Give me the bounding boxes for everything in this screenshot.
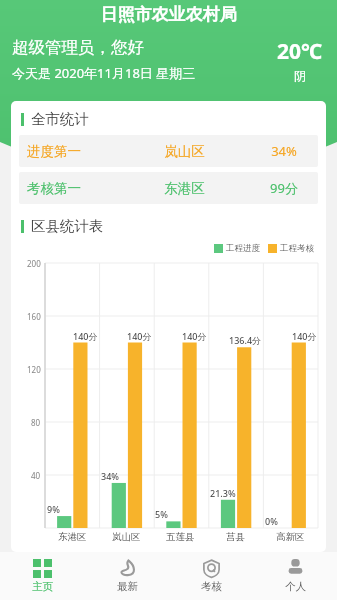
staticText: 140分 [73, 330, 98, 342]
staticText: 最新 [117, 580, 138, 593]
staticText: 超级管理员，您好 [12, 37, 144, 58]
button[interactable]: 考核 [169, 552, 253, 600]
staticText: 140分 [182, 330, 207, 342]
staticText: 5% [155, 508, 168, 520]
staticText: 考核第一 [27, 180, 113, 197]
staticText: 工程进度 [226, 243, 260, 254]
button[interactable]: 个人 [253, 552, 337, 600]
staticText: 岚山区 [112, 531, 141, 543]
staticText: 日照市农业农村局 [0, 4, 337, 25]
staticText: 40 [31, 470, 41, 481]
staticText: 岚山区 [113, 143, 256, 160]
staticText: 99分 [256, 179, 312, 197]
button[interactable]: 最新 [85, 552, 169, 600]
staticText: 34% [101, 470, 119, 482]
staticText: 高新区 [276, 531, 305, 543]
staticText: 140分 [127, 330, 152, 342]
button[interactable]: 主页 [0, 552, 85, 600]
staticText: 东港区 [113, 180, 256, 197]
staticText: 阴 [294, 68, 306, 83]
staticText: 东港区 [58, 531, 87, 543]
staticText: 0% [265, 515, 278, 527]
staticText: 200 [27, 258, 41, 269]
staticText: 区县统计表 [31, 217, 104, 235]
staticText: 9% [47, 503, 60, 515]
staticText: 全市统计 [31, 110, 89, 128]
staticText: 进度第一 [27, 143, 113, 160]
staticText: 个人 [285, 580, 306, 593]
staticText: 五莲县 [166, 531, 195, 543]
staticText: 120 [27, 364, 41, 375]
staticText: 工程考核 [280, 243, 314, 254]
staticText: 140分 [292, 330, 317, 342]
staticText: 考核 [201, 580, 222, 593]
button[interactable]: 进度第一 [19, 135, 318, 167]
staticText: 160 [27, 311, 41, 322]
staticText: 136.4分 [229, 334, 262, 346]
staticText: 20℃ [277, 37, 323, 66]
staticText: 80 [31, 417, 41, 428]
staticText: 21.3% [210, 487, 236, 499]
staticText: 今天是 2020年11月18日 星期三 [12, 64, 196, 82]
staticText: 莒县 [226, 531, 245, 543]
button[interactable]: 考核第一 [19, 172, 318, 204]
staticText: 34% [256, 142, 312, 160]
staticText: 主页 [32, 580, 53, 593]
